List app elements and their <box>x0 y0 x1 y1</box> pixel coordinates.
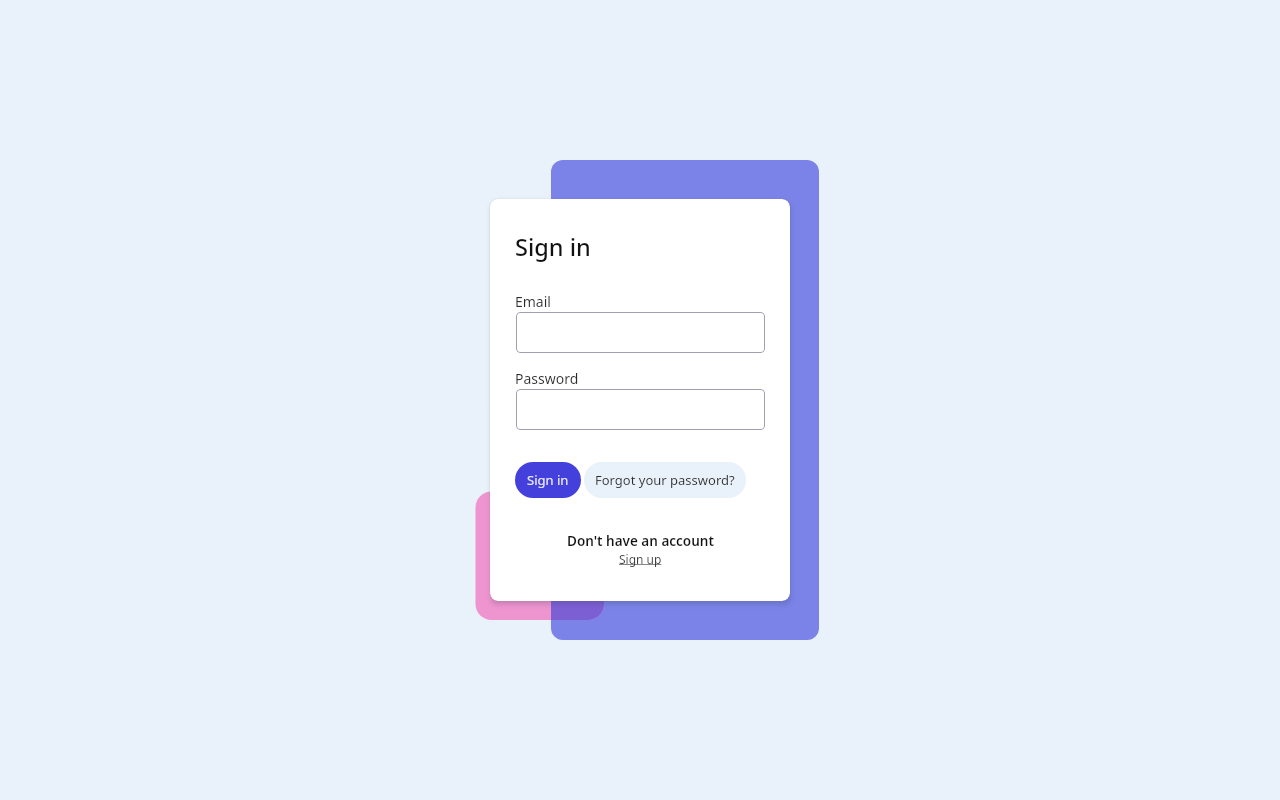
staticText: Sign in <box>515 231 591 263</box>
staticText: Password <box>515 369 579 388</box>
button[interactable]: Password input field <box>516 389 765 430</box>
button[interactable]: Email input field <box>516 312 765 353</box>
staticText: Email <box>515 292 551 311</box>
staticText: Sign in <box>527 471 569 489</box>
button[interactable]: Forgot your password? <box>584 462 746 498</box>
staticText: Sign up <box>619 551 662 567</box>
button[interactable]: Sign up <box>619 551 662 567</box>
staticText: Don't have an account <box>567 532 714 550</box>
button[interactable]: Sign in <box>515 462 581 498</box>
staticText: Forgot your password? <box>595 471 735 489</box>
